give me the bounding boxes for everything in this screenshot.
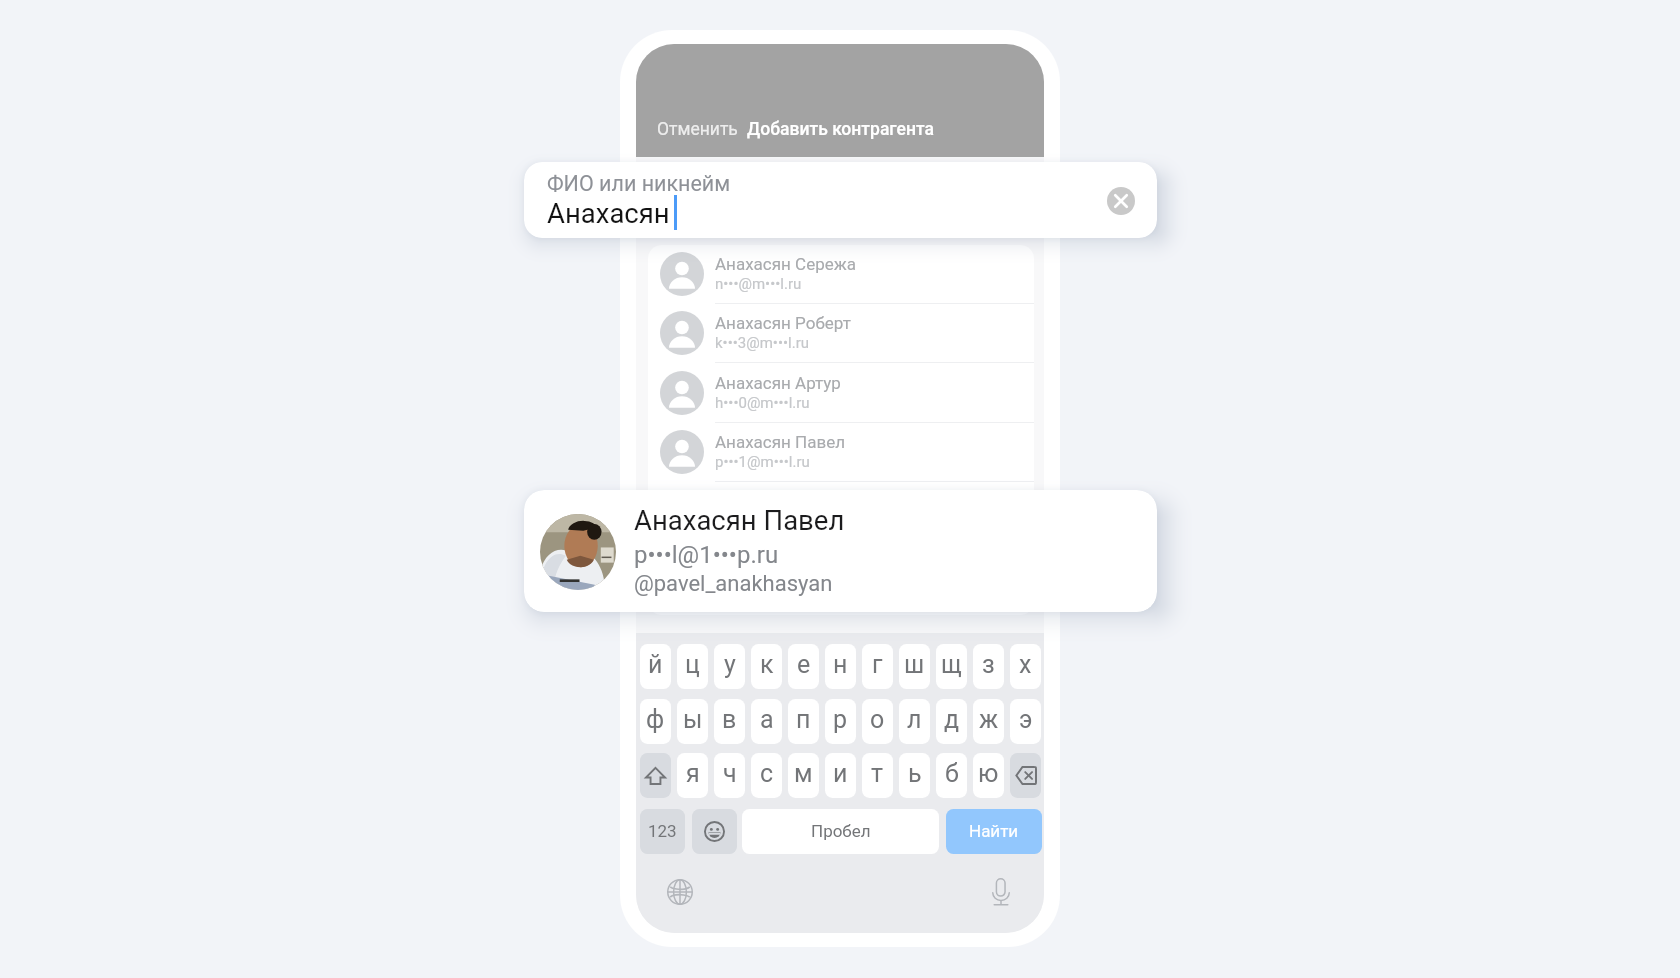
staticText: Анахасян Павел: [715, 432, 846, 452]
button[interactable]: г: [862, 644, 893, 689]
button[interactable]: ф: [640, 699, 671, 744]
staticText: Анахасян Роберт: [715, 313, 851, 333]
button[interactable]: х: [1010, 644, 1041, 689]
staticText: я: [686, 759, 700, 788]
button[interactable]: Shift: [640, 753, 671, 798]
button[interactable]: Анахасян Павел: [524, 490, 1157, 612]
staticText: n•••@m•••l.ru: [715, 275, 802, 293]
staticText: p•••l@1•••p.ru: [634, 541, 779, 569]
staticText: @pavel_anakhasyan: [634, 571, 833, 597]
button[interactable]: Анахасян Артём: [648, 483, 1034, 542]
staticText: п: [796, 705, 811, 734]
staticText: ж: [979, 705, 999, 734]
button[interactable]: н: [825, 644, 856, 689]
button[interactable]: й: [640, 644, 671, 689]
staticText: h•••0@m•••l.ru: [715, 394, 810, 412]
button[interactable]: Очистить: [1107, 187, 1135, 215]
button[interactable]: Сменить язык: [667, 879, 693, 905]
button[interactable]: Эмодзи: [692, 809, 737, 854]
button[interactable]: Анахасян Давид: [648, 542, 1034, 601]
staticText: k•••3@m•••l.ru: [715, 334, 809, 352]
staticText: э: [1019, 705, 1033, 734]
staticText: Пробел: [811, 821, 871, 841]
staticText: щ: [941, 650, 962, 679]
staticText: Анахасян Артём: [715, 492, 845, 512]
button[interactable]: э: [1010, 699, 1041, 744]
staticText: Найти: [969, 821, 1019, 841]
staticText: a•••5@m•••l.ru: [715, 513, 810, 531]
button[interactable]: щ: [936, 644, 967, 689]
staticText: ю: [978, 759, 999, 788]
button[interactable]: м: [788, 753, 819, 798]
staticText: й: [648, 650, 663, 679]
staticText: у: [724, 650, 736, 679]
staticText: д: [944, 705, 960, 734]
staticText: Отменить: [657, 119, 738, 140]
button[interactable]: о: [862, 699, 893, 744]
button[interactable]: б: [936, 753, 967, 798]
staticText: о: [870, 705, 885, 734]
staticText: ш: [904, 650, 925, 679]
button[interactable]: Удалить: [1010, 753, 1041, 798]
button[interactable]: л: [899, 699, 930, 744]
staticText: и: [833, 759, 848, 788]
button[interactable]: з: [973, 644, 1004, 689]
button[interactable]: с: [751, 753, 782, 798]
button[interactable]: 123: [640, 809, 685, 854]
button[interactable]: ФИО или никнейм: [524, 162, 1157, 238]
staticText: в: [722, 705, 737, 734]
button[interactable]: ч: [714, 753, 745, 798]
staticText: ц: [685, 650, 700, 679]
staticText: р: [833, 705, 848, 734]
staticText: Анахасян Павел: [634, 504, 845, 536]
button[interactable]: р: [825, 699, 856, 744]
staticText: Анахасян Артур: [715, 373, 841, 393]
staticText: т: [871, 759, 884, 788]
button[interactable]: Анахасян Роберт: [648, 304, 1034, 363]
staticText: з: [982, 650, 995, 679]
button[interactable]: ы: [677, 699, 708, 744]
button[interactable]: ш: [899, 644, 930, 689]
staticText: ф: [646, 705, 665, 734]
button[interactable]: Анахасян Павел: [648, 423, 1034, 482]
button[interactable]: ж: [973, 699, 1004, 744]
staticText: м: [794, 759, 813, 788]
staticText: d•••7@m•••l.ru: [715, 572, 810, 590]
button[interactable]: к: [751, 644, 782, 689]
button[interactable]: я: [677, 753, 708, 798]
staticText: p•••1@m•••l.ru: [715, 453, 810, 471]
button[interactable]: п: [788, 699, 819, 744]
staticText: Анахасян Давид: [715, 551, 847, 571]
button[interactable]: в: [714, 699, 745, 744]
staticText: ь: [908, 759, 922, 788]
staticText: г: [872, 650, 883, 679]
button[interactable]: д: [936, 699, 967, 744]
button[interactable]: ь: [899, 753, 930, 798]
staticText: х: [1019, 650, 1032, 679]
button[interactable]: а: [751, 699, 782, 744]
staticText: ФИО или никнейм: [547, 171, 731, 196]
button[interactable]: и: [825, 753, 856, 798]
button[interactable]: у: [714, 644, 745, 689]
staticText: Добавить контрагента: [747, 119, 934, 140]
button[interactable]: Отменить: [645, 111, 750, 148]
button[interactable]: Пробел: [742, 809, 939, 854]
staticText: Анахасян Сережа: [715, 254, 856, 274]
button[interactable]: е: [788, 644, 819, 689]
button[interactable]: Анахасян Сережа: [648, 245, 1034, 304]
button[interactable]: ю: [973, 753, 1004, 798]
staticText: к: [760, 650, 774, 679]
button[interactable]: Анахасян Артур: [648, 364, 1034, 423]
staticText: с: [760, 759, 774, 788]
staticText: 123: [648, 821, 677, 841]
button[interactable]: Найти: [946, 809, 1042, 854]
staticText: л: [907, 705, 922, 734]
staticText: е: [797, 650, 811, 679]
staticText: Анахасян: [547, 197, 670, 229]
staticText: б: [945, 759, 959, 788]
button[interactable]: т: [862, 753, 893, 798]
button[interactable]: Голосовой ввод: [992, 878, 1010, 906]
button[interactable]: ц: [677, 644, 708, 689]
staticText: ы: [683, 705, 703, 734]
staticText: ч: [723, 759, 737, 788]
